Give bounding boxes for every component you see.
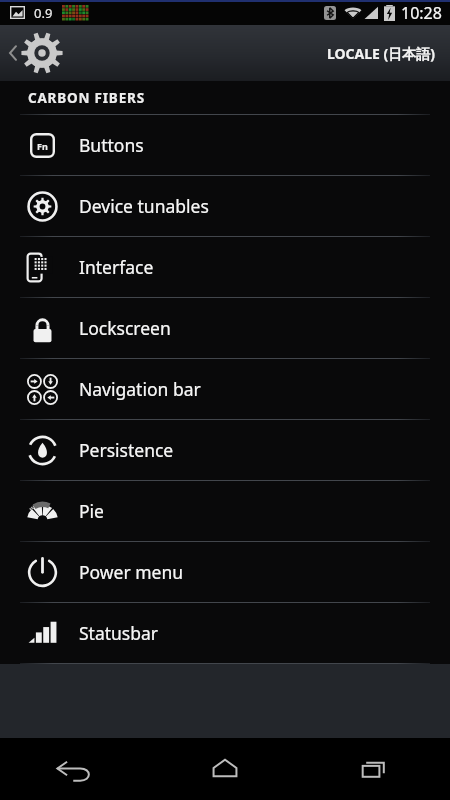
staticText: Navigation bar [79, 377, 201, 401]
staticText: Pie [79, 499, 104, 523]
button[interactable]: Power menu [0, 542, 450, 602]
staticText: CARBON FIBERS [28, 89, 145, 107]
staticText: Statusbar [79, 621, 159, 645]
button[interactable]: Home [150, 738, 300, 800]
button[interactable]: LOCALE (日本語) [313, 25, 450, 81]
button[interactable]: Recent apps [300, 738, 450, 800]
staticText: 0.9 [34, 4, 53, 22]
button[interactable]: Interface [0, 237, 450, 297]
staticText: Persistence [79, 438, 174, 462]
button[interactable]: Navigation bar [0, 359, 450, 419]
button[interactable]: Pie [0, 481, 450, 541]
button[interactable]: Device tunables [0, 176, 450, 236]
staticText: Interface [79, 255, 154, 279]
staticText: Power menu [79, 560, 184, 584]
staticText: LOCALE (日本語) [327, 44, 436, 63]
button[interactable]: Statusbar [0, 603, 450, 663]
staticText: Lockscreen [79, 316, 171, 340]
staticText: Buttons [79, 133, 144, 157]
staticText: Fn [37, 140, 48, 152]
staticText: Device tunables [79, 194, 209, 218]
button[interactable]: Lockscreen [0, 298, 450, 358]
staticText: 10:28 [401, 2, 442, 24]
button[interactable]: Back [0, 738, 150, 800]
button[interactable]: Fn [0, 115, 450, 175]
button[interactable]: Navigate up, Settings [0, 25, 72, 81]
button[interactable]: Persistence [0, 420, 450, 480]
